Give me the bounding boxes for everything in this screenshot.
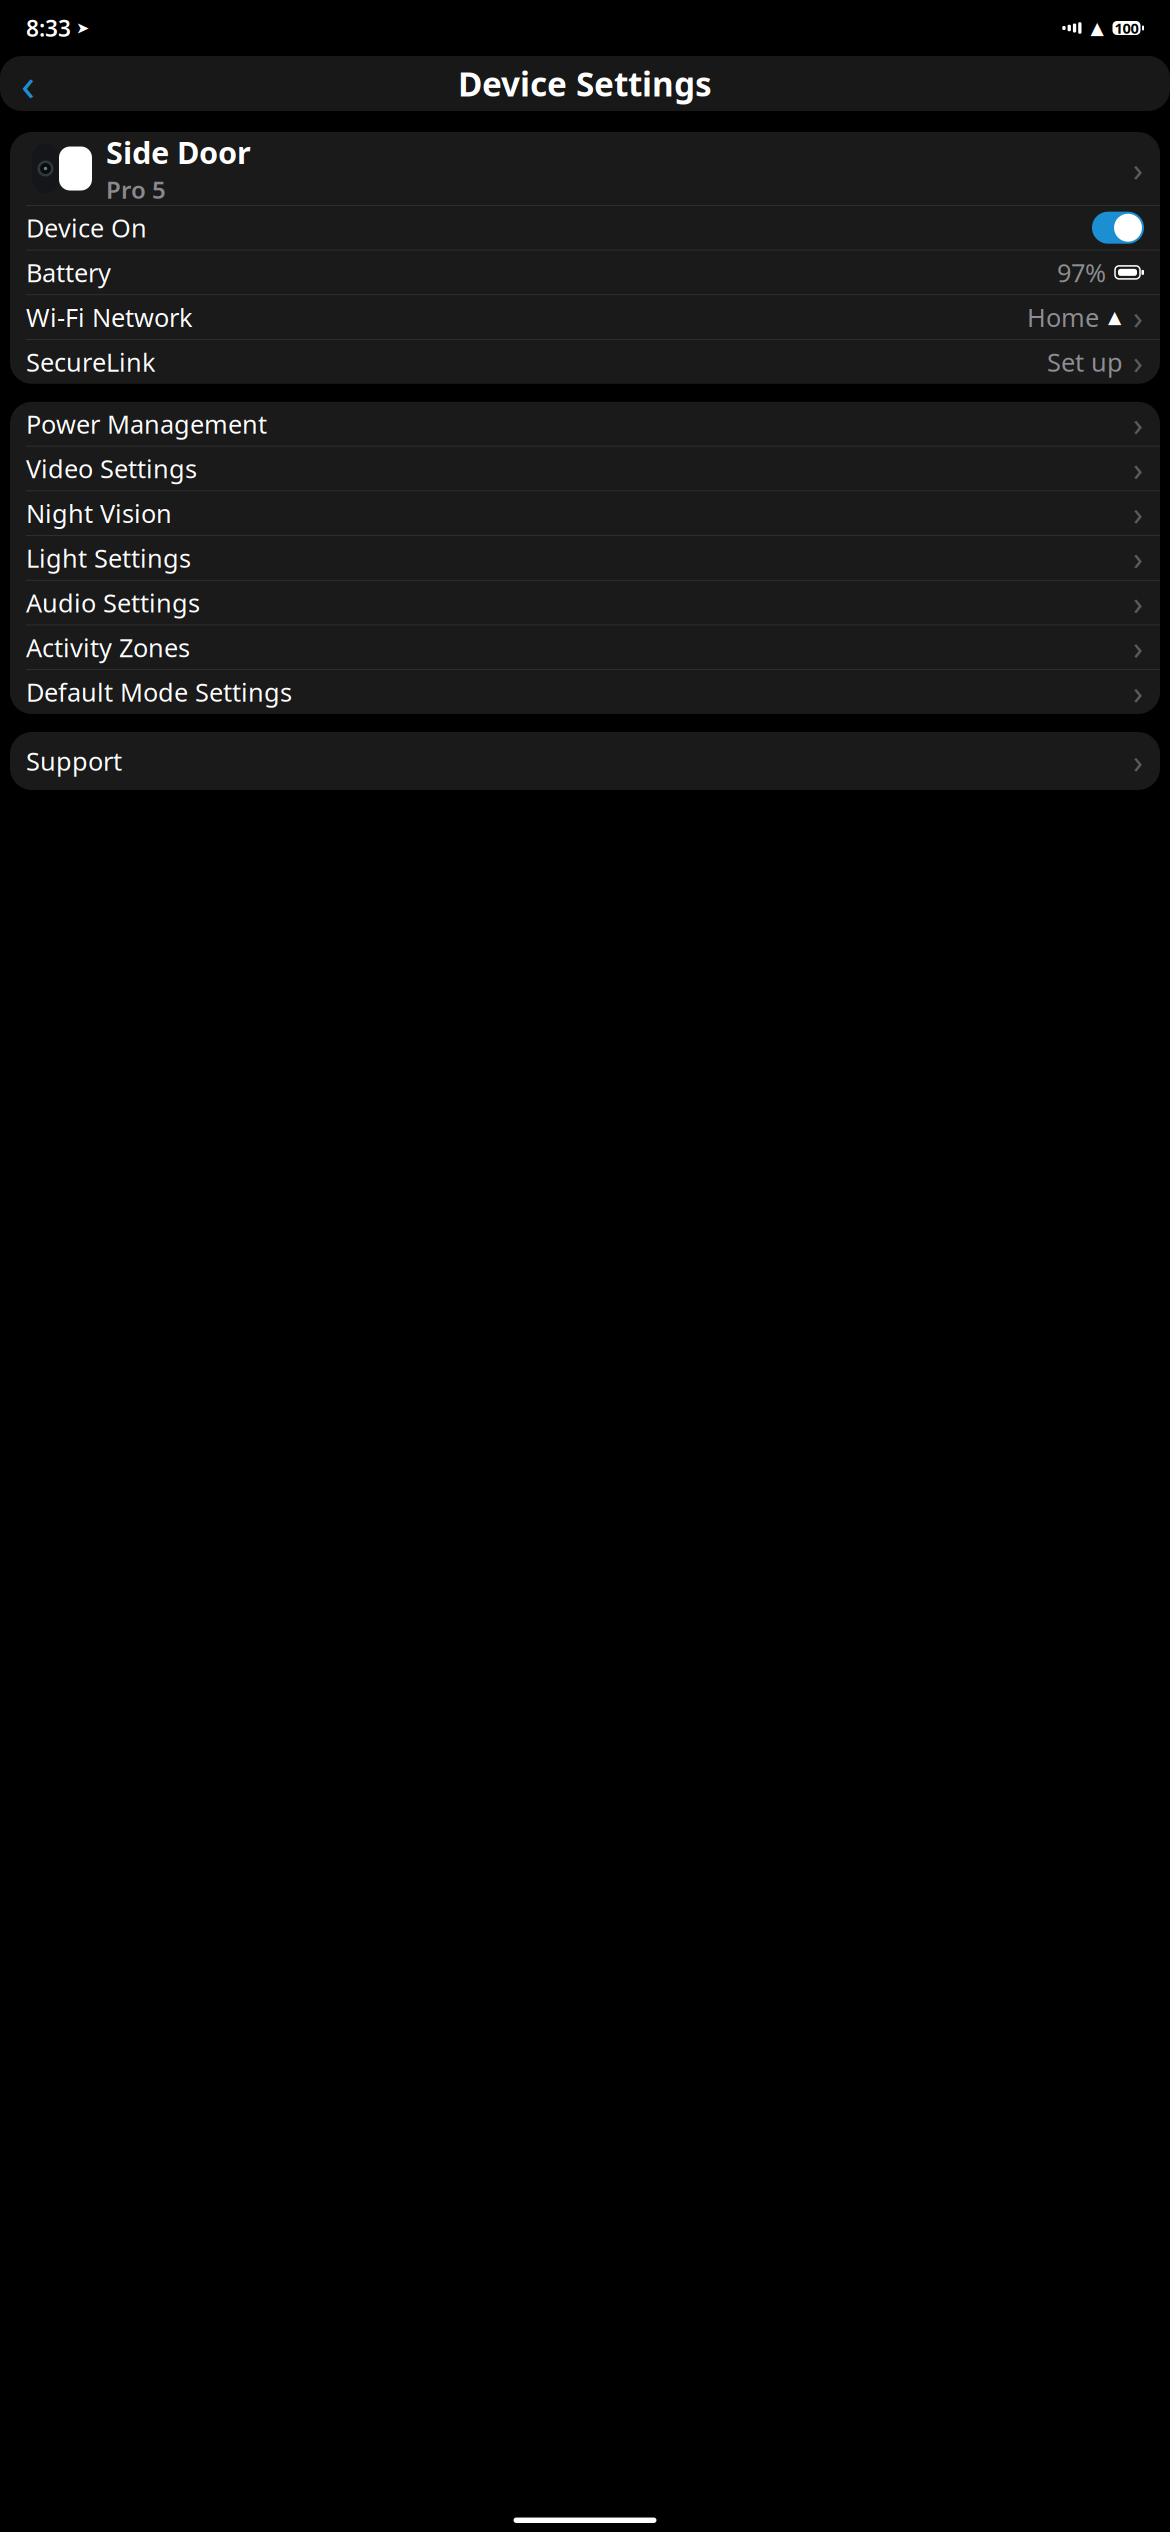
button[interactable]: Wi-Fi Network [10, 295, 1160, 339]
button[interactable]: Default Mode Settings [10, 670, 1160, 714]
staticText: ‹ [21, 53, 35, 114]
staticText: Power Management [26, 407, 267, 441]
staticText: Light Settings [26, 541, 191, 575]
button[interactable]: Support [10, 732, 1160, 790]
staticText: › [1133, 492, 1143, 534]
button[interactable]: Activity Zones [10, 625, 1160, 669]
button[interactable]: Video Settings [10, 446, 1160, 490]
staticText: › [1133, 341, 1143, 383]
staticText: › [1133, 447, 1143, 490]
staticText: Wi-Fi Network [26, 300, 193, 334]
staticText: › [1133, 403, 1143, 445]
button[interactable]: SecureLink [10, 340, 1160, 384]
staticText: 97% [1057, 256, 1106, 289]
button[interactable]: Power Management [10, 402, 1160, 446]
staticText: Set up [1047, 345, 1123, 379]
staticText: 8:33 [26, 13, 71, 43]
staticText: Activity Zones [26, 630, 190, 664]
staticText: › [1133, 581, 1143, 624]
button[interactable]: Device On [10, 206, 1160, 250]
staticText: Support [26, 744, 122, 778]
staticText: › [1133, 296, 1143, 338]
staticText: › [1133, 626, 1143, 669]
staticText: SecureLink [26, 345, 156, 379]
staticText: Home [1027, 300, 1099, 334]
staticText: ➤ [76, 19, 89, 37]
staticText: Side Door [106, 132, 251, 172]
button[interactable]: Side Door [10, 132, 1160, 205]
staticText: Night Vision [26, 496, 172, 530]
button[interactable]: Night Vision [10, 491, 1160, 535]
staticText: Battery [26, 256, 111, 289]
staticText: › [1133, 671, 1143, 713]
button[interactable]: Light Settings [10, 536, 1160, 580]
staticText: › [1133, 537, 1143, 579]
staticText: › [1133, 740, 1143, 782]
staticText: Device On [26, 211, 147, 244]
staticText: ▲ [1108, 307, 1121, 327]
staticText: Default Mode Settings [26, 675, 292, 709]
staticText: Video Settings [26, 452, 197, 485]
staticText: ▲ [1090, 18, 1103, 38]
staticText: Audio Settings [26, 586, 200, 619]
staticText: Pro 5 [106, 173, 166, 205]
button[interactable]: Audio Settings [10, 581, 1160, 625]
staticText: 100 [1114, 18, 1138, 38]
staticText: › [1133, 146, 1143, 191]
button[interactable]: Back [6, 59, 50, 107]
staticText: Device Settings [458, 61, 712, 106]
